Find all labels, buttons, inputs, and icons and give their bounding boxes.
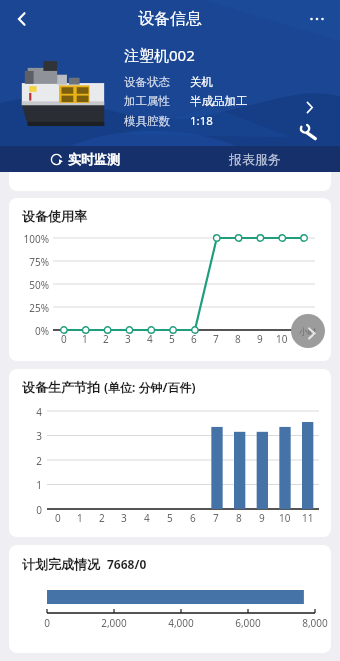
staticText: 0%	[11, 324, 49, 338]
staticText: 1	[82, 332, 88, 346]
staticText: 1	[11, 478, 42, 492]
staticText: 11	[298, 332, 310, 346]
staticText: 7	[213, 511, 219, 525]
staticText: 75%	[11, 255, 49, 269]
staticText: 关机	[190, 75, 213, 89]
staticText: 0	[61, 332, 67, 346]
button[interactable]: Switch time unit to hours	[291, 314, 325, 348]
staticText: 0	[11, 503, 42, 517]
staticText: 7	[213, 332, 219, 346]
staticText: 模具腔数	[124, 114, 180, 128]
staticText: 设备使用率	[22, 208, 87, 224]
staticText: 计划完成情况	[22, 556, 100, 572]
staticText: 设备状态	[124, 75, 180, 89]
staticText: 1:18	[190, 113, 213, 129]
button[interactable]: Back	[4, 1, 40, 37]
staticText: 4,000	[159, 616, 203, 630]
staticText: 注塑机002	[124, 45, 195, 65]
staticText: 报表服务	[229, 151, 281, 167]
staticText: 6,000	[226, 616, 270, 630]
staticText: 6	[191, 332, 197, 346]
button[interactable]: More options	[300, 2, 334, 36]
staticText: 9	[257, 332, 263, 346]
staticText: 5	[169, 332, 175, 346]
button[interactable]: Settings	[294, 117, 322, 145]
staticText: 25%	[11, 301, 49, 315]
staticText: 3	[121, 511, 127, 525]
staticText: 11	[302, 511, 314, 525]
staticText: 4	[11, 405, 42, 419]
staticText: 半成品加工	[190, 94, 248, 108]
staticText: (单位: 分钟/百件)	[104, 379, 196, 395]
staticText: 4	[144, 511, 150, 525]
staticText: 8	[236, 511, 242, 525]
staticText: 实时监测	[68, 151, 120, 167]
staticText: 2,000	[92, 616, 136, 630]
staticText: 100%	[11, 232, 49, 246]
staticText: 8	[235, 332, 241, 346]
staticText: 5	[167, 511, 173, 525]
staticText: 10	[276, 332, 288, 346]
staticText: 4	[147, 332, 153, 346]
staticText: 2	[99, 511, 105, 525]
staticText: 2	[103, 332, 109, 346]
button[interactable]: Details	[294, 92, 324, 122]
staticText: 0	[55, 511, 61, 525]
staticText: 50%	[11, 278, 49, 292]
staticText: 10	[279, 511, 291, 525]
staticText: 8,000	[293, 616, 331, 630]
staticText: 3	[11, 429, 42, 443]
staticText: 小时	[299, 326, 317, 337]
button[interactable]: 报表服务	[170, 146, 340, 172]
staticText: 0	[25, 616, 69, 630]
staticText: 2	[11, 454, 42, 468]
staticText: 7668/0	[107, 556, 147, 572]
staticText: 1	[77, 511, 83, 525]
staticText: 9	[259, 511, 265, 525]
staticText: 设备生产节拍	[22, 379, 100, 395]
staticText: 6	[190, 511, 196, 525]
staticText: 3	[125, 332, 131, 346]
staticText: 加工属性	[124, 94, 180, 108]
button[interactable]: 实时监测	[0, 146, 170, 172]
staticText: 设备信息	[138, 9, 202, 29]
